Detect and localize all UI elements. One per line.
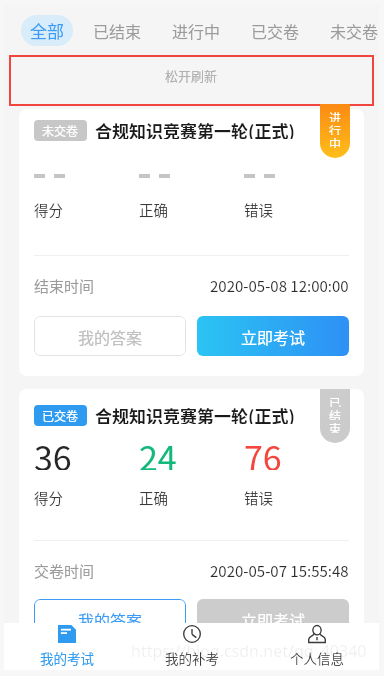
- staticText: 立即考试: [241, 608, 306, 631]
- staticText: 进: [329, 109, 342, 122]
- button[interactable]: 我的补考: [129, 623, 254, 670]
- staticText: 合规知识竞赛第一轮(正式): [95, 403, 295, 424]
- staticText: 2020-05-08 12:00:00: [210, 275, 349, 297]
- staticText: 我的补考: [165, 648, 219, 668]
- staticText: 错误: [244, 487, 273, 508]
- button[interactable]: 我的答案: [34, 599, 186, 639]
- staticText: 36: [34, 432, 72, 470]
- staticText: 未交卷: [42, 122, 79, 139]
- staticText: 行: [329, 122, 342, 135]
- staticText: 中: [329, 135, 342, 148]
- button[interactable]: 立即考试: [197, 599, 349, 639]
- staticText: 76: [244, 432, 282, 470]
- staticText: 松开刷新: [165, 66, 218, 85]
- button[interactable]: 已交卷: [236, 13, 315, 48]
- staticText: 已结束: [93, 19, 142, 42]
- button[interactable]: 进行中: [157, 13, 236, 48]
- staticText: 得分: [34, 199, 63, 220]
- staticText: 我的答案: [78, 325, 143, 348]
- staticText: 交卷时间: [34, 560, 95, 582]
- staticText: 已交卷: [251, 19, 300, 42]
- staticText: 已: [329, 394, 342, 407]
- button[interactable]: 未交卷: [315, 13, 384, 48]
- staticText: 束: [329, 420, 342, 433]
- staticText: 24: [139, 432, 177, 470]
- button[interactable]: 我的答案: [34, 316, 186, 356]
- staticText: 我的考试: [40, 648, 94, 668]
- staticText: 正确: [139, 487, 168, 508]
- button[interactable]: 个人信息: [254, 623, 379, 670]
- staticText: 已交卷: [42, 407, 79, 424]
- staticText: 正确: [139, 199, 168, 220]
- staticText: 个人信息: [290, 648, 344, 668]
- button[interactable]: 已结束: [78, 13, 157, 48]
- staticText: 2020-05-07 15:55:48: [210, 560, 349, 582]
- staticText: 结: [329, 407, 342, 420]
- staticText: 未交卷: [330, 19, 379, 42]
- staticText: 进行中: [172, 19, 221, 42]
- staticText: 合规知识竞赛第一轮(正式): [95, 118, 295, 139]
- button[interactable]: 全部: [21, 15, 73, 46]
- button[interactable]: 我的考试: [4, 623, 129, 670]
- staticText: https://blog.csdn.net/qq_40340: [131, 640, 367, 662]
- staticText: 得分: [34, 487, 63, 508]
- staticText: 全部: [30, 18, 64, 43]
- button[interactable]: 立即考试: [197, 316, 349, 356]
- staticText: 立即考试: [241, 325, 306, 348]
- staticText: 结束时间: [34, 275, 95, 297]
- staticText: 错误: [244, 199, 273, 220]
- staticText: 我的答案: [78, 608, 143, 631]
